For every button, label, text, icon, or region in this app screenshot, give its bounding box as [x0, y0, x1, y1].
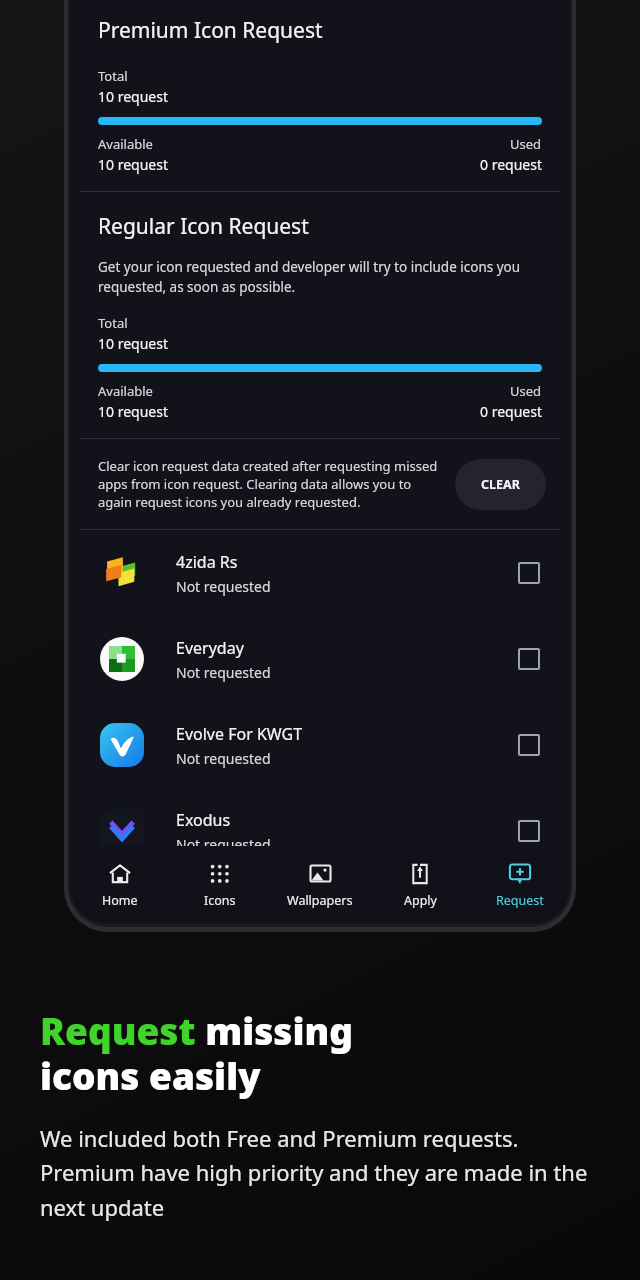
staticText: 10 request: [98, 155, 168, 174]
staticText: Not requested: [176, 663, 271, 682]
staticText: We included both Free and Premium reques…: [40, 1123, 604, 1223]
staticText: 0 request: [480, 402, 542, 421]
staticText: 10 request: [98, 87, 168, 106]
staticText: Evolve For KWGT: [176, 723, 303, 745]
staticText: Not requested: [176, 577, 271, 596]
button[interactable]: CLEAR: [455, 459, 546, 510]
button[interactable]: Exodus: [70, 788, 570, 874]
staticText: Apply: [404, 892, 437, 909]
staticText: Used: [510, 135, 542, 153]
button[interactable]: 4zida Rs: [70, 530, 570, 616]
staticText: 10 request: [98, 334, 168, 353]
staticText: Request: [496, 892, 544, 909]
button[interactable]: Evolve For KWGT: [70, 702, 570, 788]
staticText: CLEAR: [481, 476, 520, 493]
staticText: Get your icon requested and developer wi…: [98, 258, 542, 296]
staticText: Icons: [204, 892, 236, 909]
button[interactable]: Everyday: [70, 616, 570, 702]
button[interactable]: Request: [470, 846, 570, 924]
staticText: Home: [102, 892, 138, 909]
staticText: Used: [510, 382, 542, 400]
staticText: 10 request: [98, 402, 168, 421]
staticText: Not requested: [176, 835, 271, 854]
staticText: 4zida Rs: [176, 551, 238, 573]
staticText: Available: [98, 382, 153, 400]
staticText: Available: [98, 135, 153, 153]
button[interactable]: Icons: [170, 846, 270, 924]
staticText: Premium Icon Request: [98, 16, 323, 45]
button[interactable]: Home: [70, 846, 170, 924]
staticText: Wallpapers: [287, 892, 353, 909]
button[interactable]: Wallpapers: [270, 846, 370, 924]
staticText: Not requested: [176, 749, 271, 768]
staticText: Total: [98, 67, 128, 85]
staticText: Regular Icon Request: [98, 212, 309, 241]
staticText: Request missing icons easily: [40, 1005, 354, 1101]
staticText: Clear icon request data created after re…: [98, 457, 441, 511]
staticText: Exodus: [176, 809, 231, 831]
staticText: 0 request: [480, 155, 542, 174]
staticText: Everyday: [176, 637, 244, 659]
button[interactable]: Apply: [370, 846, 470, 924]
staticText: Total: [98, 314, 128, 332]
